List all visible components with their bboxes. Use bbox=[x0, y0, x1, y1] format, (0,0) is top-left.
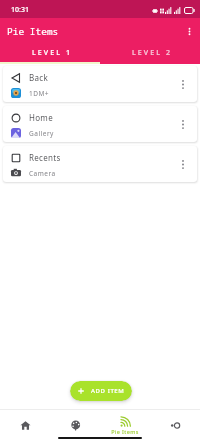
button[interactable]: Home bbox=[3, 106, 197, 142]
staticText: 10:31 bbox=[11, 5, 29, 15]
staticText: LEVEL 2 bbox=[132, 48, 173, 58]
button[interactable]: Item options bbox=[173, 74, 193, 94]
button[interactable]: LEVEL 2 bbox=[100, 44, 200, 62]
staticText: Gallery bbox=[29, 129, 54, 138]
button[interactable]: Themes bbox=[50, 410, 100, 435]
staticText: Pie Items bbox=[111, 428, 139, 435]
staticText: ADD ITEM bbox=[91, 387, 125, 395]
staticText: LEVEL 1 bbox=[32, 48, 73, 58]
button[interactable]: LEVEL 1 bbox=[0, 44, 100, 62]
button[interactable]: Item options bbox=[173, 154, 193, 174]
button[interactable]: Home bbox=[0, 410, 50, 435]
button[interactable]: Contrast bbox=[150, 410, 200, 435]
staticText: 1DM+ bbox=[29, 89, 50, 98]
button[interactable]: More options bbox=[178, 20, 200, 42]
staticText: Back bbox=[29, 72, 48, 83]
button[interactable]: Pie Items bbox=[100, 410, 150, 435]
button[interactable]: Back bbox=[3, 66, 197, 102]
button[interactable]: ADD ITEM bbox=[70, 381, 132, 401]
staticText: Recents bbox=[29, 152, 61, 163]
staticText: Pie Items bbox=[7, 25, 59, 38]
staticText: Home bbox=[29, 112, 53, 123]
staticText: Camera bbox=[29, 169, 56, 178]
button[interactable]: Item options bbox=[173, 114, 193, 134]
button[interactable]: Recents bbox=[3, 146, 197, 182]
